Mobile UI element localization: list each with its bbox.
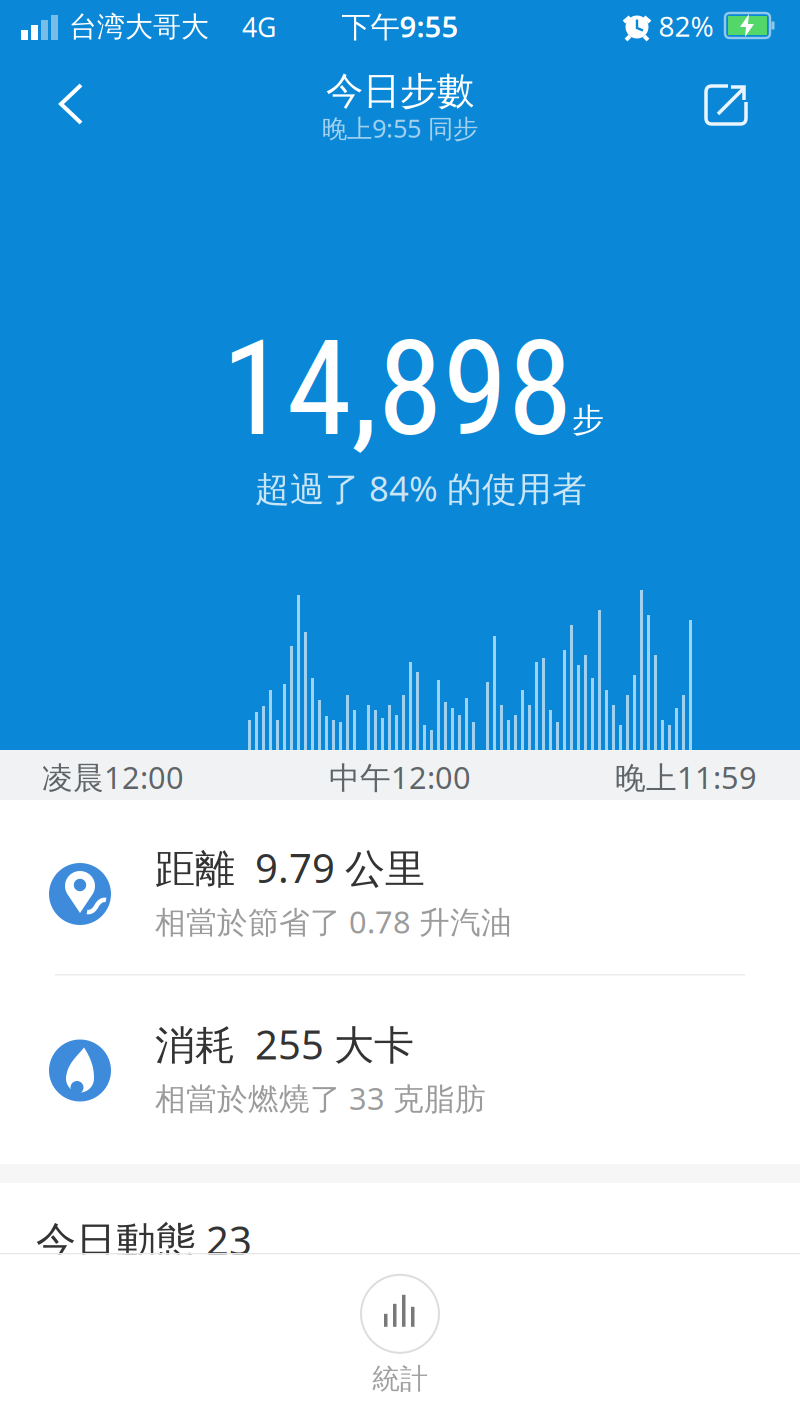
staticText: 相當於節省了 0.78 升汽油 <box>155 901 512 942</box>
staticText: 14,898 <box>221 312 572 466</box>
staticText: 今日步數 <box>326 68 474 114</box>
staticText: 今日動態 23 <box>36 1213 252 1266</box>
staticText: 晚上9:55 同步 <box>322 111 478 145</box>
staticText: 凌晨12:00 <box>42 757 184 797</box>
staticText: 下午9:55 <box>341 6 458 45</box>
staticText: 消耗 255 大卡 <box>155 1017 414 1071</box>
button[interactable]: 消耗 255 大卡 <box>0 975 800 1163</box>
staticText: 步 <box>572 400 604 440</box>
staticText: 晚上11:59 <box>615 757 757 797</box>
staticText: 相當於燃燒了 33 克脂肪 <box>155 1078 486 1118</box>
staticText: 超過了 84% 的使用者 <box>255 465 587 511</box>
button[interactable]: 統計 <box>360 1274 440 1396</box>
staticText: 距離 9.79 公里 <box>155 841 425 894</box>
staticText: 台湾大哥大 <box>69 10 209 44</box>
staticText: 4G <box>242 9 276 45</box>
button[interactable]: 距離 9.79 公里 <box>0 800 800 975</box>
button[interactable]: 分享 <box>702 80 750 128</box>
button[interactable]: 返回 <box>57 81 101 127</box>
staticText: 中午12:00 <box>329 757 471 797</box>
staticText: 82% <box>658 7 713 45</box>
staticText: 統計 <box>372 1362 428 1396</box>
